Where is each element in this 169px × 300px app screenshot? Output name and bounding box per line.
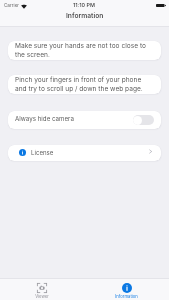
button[interactable]: Make sure your hands are not too close t… [8,41,161,60]
button[interactable]: Always hide camera [8,111,161,129]
staticText: License [31,149,54,156]
staticText: Always hide camera [15,115,74,123]
button[interactable]: License [8,145,161,161]
staticText: Make sure your hands are not too close t… [15,42,146,59]
staticText: Pinch your fingers in front of your phon… [15,76,143,93]
staticText: Viewer [35,294,49,299]
button[interactable]: Viewer [0,279,84,300]
staticText: 11:10 PM [73,2,95,9]
staticText: Information [66,12,104,20]
button[interactable]: Pinch your fingers in front of your phon… [8,75,161,94]
button[interactable]: Information [84,279,169,300]
staticText: Information [115,294,138,299]
staticText: Carrier [4,3,20,9]
